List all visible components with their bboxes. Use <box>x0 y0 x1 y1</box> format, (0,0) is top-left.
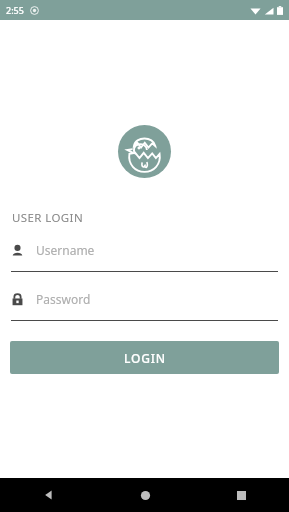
staticText: LOGIN <box>124 350 166 366</box>
other: Password <box>11 293 24 306</box>
button[interactable]: Username <box>0 237 289 272</box>
staticText: Username <box>36 242 95 258</box>
button[interactable]: Recents <box>193 478 289 512</box>
button[interactable]: Password <box>0 286 289 321</box>
button[interactable]: Back <box>0 478 97 512</box>
button[interactable]: Home <box>97 478 193 512</box>
staticText: 2:55 <box>6 4 24 16</box>
staticText: USER LOGIN <box>12 210 84 226</box>
staticText: Password <box>36 291 91 307</box>
other: Username <box>11 244 24 257</box>
button[interactable]: LOGIN <box>10 341 279 374</box>
